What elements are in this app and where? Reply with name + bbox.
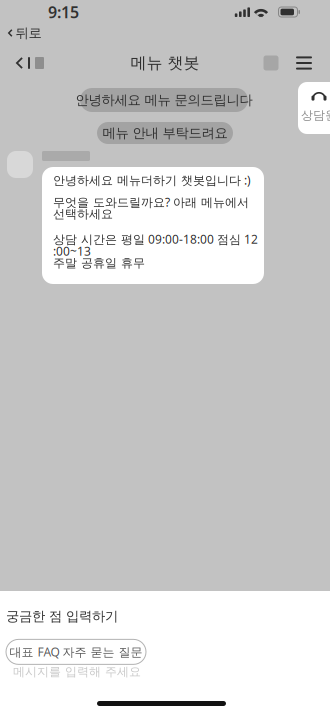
staticText: 주말 공휴일 휴무 (53, 256, 145, 270)
staticText: 대표 FAQ 자주 묻는 질문 (9, 644, 142, 660)
button[interactable]: 안녕하세요 메뉴 문의드립니다 (80, 88, 248, 112)
staticText: 9:15 (48, 1, 79, 23)
staticText: 메시지를 입력해 주세요 (13, 664, 141, 679)
button[interactable]: 대표 FAQ 자주 묻는 질문 (6, 639, 146, 664)
staticText: 상담 시간은 평일 09:00-18:00 점심 12 (53, 231, 258, 247)
staticText: 안녕하세요 메뉴더하기 챗봇입니다 :) (53, 172, 251, 188)
staticText: 무엇을 도와드릴까요? 아래 메뉴에서 (53, 194, 249, 210)
staticText: :00~13 (53, 243, 91, 259)
button[interactable]: 메뉴 안내 부탁드려요 (97, 122, 233, 144)
staticText: 메뉴 안내 부탁드려요 (102, 125, 227, 141)
staticText: 뒤로 (16, 25, 42, 41)
staticText: 안녕하세요 메뉴 문의드립니다 (75, 92, 252, 108)
staticText: 상담원 (301, 108, 330, 123)
button[interactable]: Menu (287, 46, 321, 80)
staticText: 선택하세요 (53, 207, 113, 221)
staticText: 메뉴 챗봇 (130, 53, 199, 73)
button[interactable]: 상담원 연결 (298, 82, 330, 134)
button[interactable]: Back (4, 46, 56, 80)
staticText: 궁금한 점 입력하기 (6, 608, 118, 624)
button[interactable]: Home (255, 46, 287, 80)
